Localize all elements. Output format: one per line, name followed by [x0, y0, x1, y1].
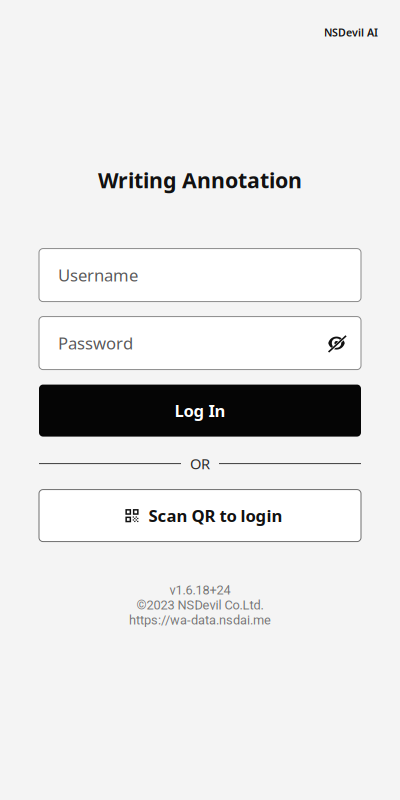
button[interactable]: Password: [39, 317, 361, 370]
staticText: NSDevil AI: [324, 25, 378, 39]
button[interactable]: Username: [39, 249, 361, 302]
staticText: Log In: [174, 399, 225, 422]
staticText: Username: [58, 264, 138, 286]
staticText: Writing Annotation: [98, 165, 302, 195]
staticText: https://wa-data.nsdai.me: [129, 613, 271, 628]
staticText: OR: [190, 454, 210, 474]
staticText: Scan QR to login: [149, 504, 283, 527]
staticText: Password: [58, 332, 133, 354]
staticText: ©2023 NSDevil Co.Ltd.: [136, 598, 263, 613]
button[interactable]: Scan QR to login: [39, 490, 361, 542]
staticText: v1.6.18+24: [169, 583, 230, 598]
button[interactable]: Log In: [39, 385, 361, 437]
